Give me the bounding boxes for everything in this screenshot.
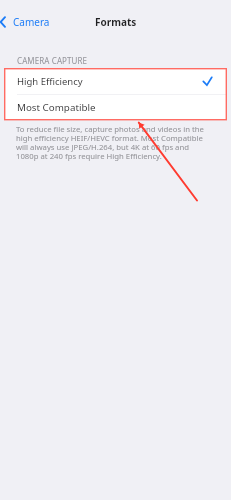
button[interactable]: Back to Camera — [0, 13, 56, 31]
button[interactable]: High Efficiency — [4, 68, 227, 94]
other: Selected — [203, 77, 212, 86]
staticText: To reduce file size, capture photos and … — [16, 124, 208, 161]
staticText: CAMERA CAPTURE — [17, 55, 88, 66]
staticText: Camera — [13, 15, 50, 29]
staticText: Formats — [95, 15, 137, 29]
button[interactable]: Most Compatible — [4, 95, 227, 120]
staticText: Most Compatible — [17, 101, 96, 114]
staticText: High Efficiency — [17, 75, 83, 88]
